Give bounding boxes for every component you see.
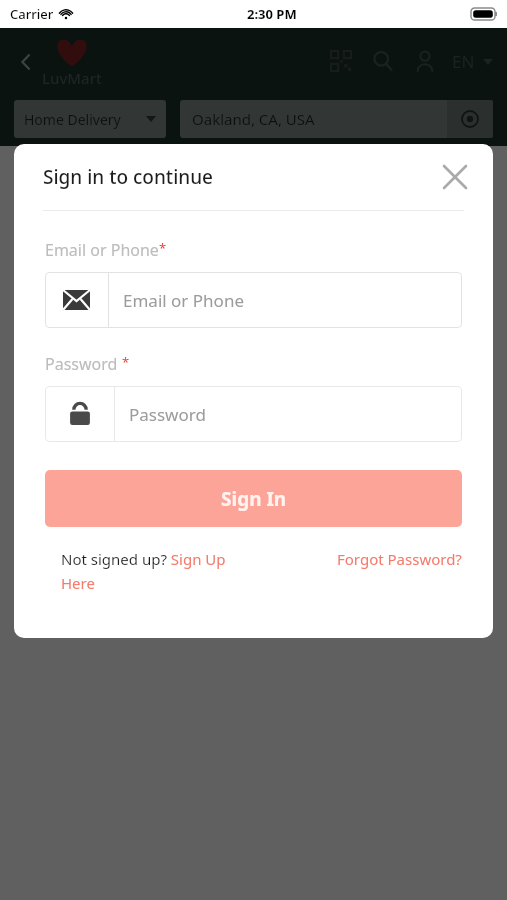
staticText: Password (45, 353, 122, 375)
staticText: Sign In (221, 486, 287, 512)
staticText: LuvBot (45, 374, 143, 415)
staticText: All (37, 247, 61, 273)
staticText: Oakland, CA, USA (192, 109, 447, 129)
button[interactable]: Map View (377, 247, 487, 273)
staticText: Sign in to continue (43, 164, 214, 190)
button[interactable]: Back (8, 44, 44, 80)
button[interactable]: Home Delivery (14, 100, 166, 138)
staticText: 30 min (188, 380, 234, 399)
staticText: PIZZA & SALADS (56, 415, 133, 429)
staticText: LuvMart (42, 68, 102, 88)
button[interactable]: Password (45, 386, 462, 442)
button[interactable]: Scan QR code (320, 40, 362, 82)
button[interactable]: LuvBot (14, 296, 493, 446)
button[interactable]: Forgot Password? (337, 549, 462, 569)
staticText: Carrier (10, 5, 54, 23)
staticText: 2:30 PM (247, 5, 297, 23)
button[interactable]: Close (433, 155, 477, 199)
staticText: Not signed up? Sign Up Here (61, 549, 236, 593)
staticText: * (122, 353, 130, 371)
staticText: Map View (400, 247, 487, 273)
button[interactable]: Email or Phone (45, 272, 462, 328)
staticText: EN (452, 50, 475, 73)
staticText: Email or Phone (123, 289, 244, 312)
button[interactable]: Oakland, CA, USA (180, 100, 493, 138)
button[interactable]: Use current location (447, 100, 493, 138)
staticText: Email or Phone (45, 239, 159, 261)
staticText: Password (129, 403, 206, 426)
button[interactable]: EN (446, 50, 499, 73)
staticText: Forgot Password? (337, 549, 462, 569)
staticText: * (159, 239, 167, 257)
button[interactable]: Not signed up? Sign Up Here (61, 549, 236, 593)
button[interactable]: Account (404, 40, 446, 82)
button[interactable]: Search (362, 40, 404, 82)
button[interactable]: Chat (406, 246, 486, 326)
button[interactable] (421, 172, 483, 234)
button[interactable]: Sign In (45, 470, 462, 527)
staticText: Home Delivery (24, 110, 121, 129)
